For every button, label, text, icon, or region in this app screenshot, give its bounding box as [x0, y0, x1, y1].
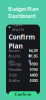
button[interactable]: Confirm	[8, 91, 37, 97]
staticText: Essentials	[8, 53, 20, 64]
staticText: $300	[29, 78, 37, 83]
staticText: $900	[29, 61, 37, 67]
staticText: Confirm Plan	[8, 32, 35, 50]
staticText: Budget Plan Dashboard	[8, 5, 38, 20]
staticText: $1,850	[28, 53, 37, 64]
staticText: $400	[29, 72, 37, 78]
staticText: Flexible	[8, 67, 21, 72]
staticText: PLAN READY	[12, 22, 24, 32]
staticText: Confirm	[14, 92, 31, 97]
staticText: Income	[8, 48, 20, 58]
staticText: Debt	[8, 72, 16, 78]
staticText: Savings	[8, 61, 21, 67]
staticText: $4,200	[28, 48, 37, 58]
staticText: Buffer	[8, 78, 20, 83]
staticText: $750	[29, 67, 37, 72]
